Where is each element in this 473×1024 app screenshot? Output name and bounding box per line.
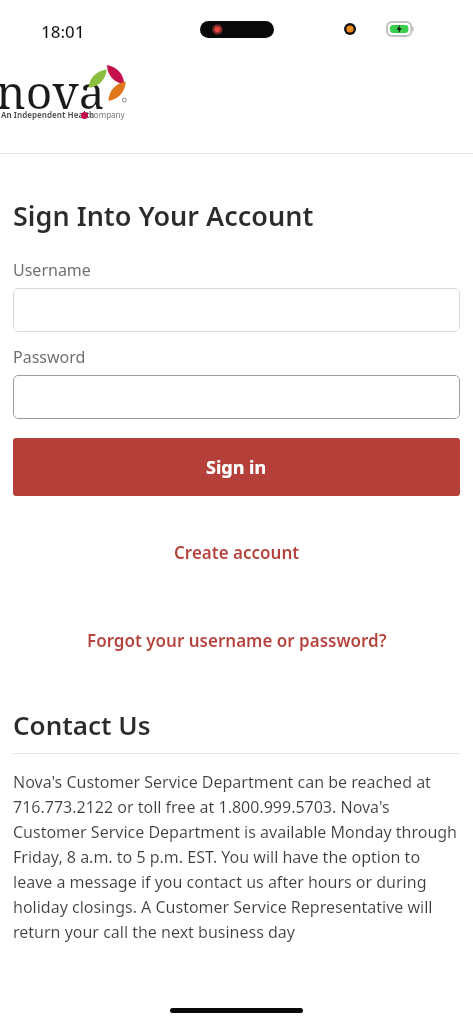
staticText: Password <box>13 346 86 368</box>
staticText: Sign Into Your Account <box>13 197 314 234</box>
staticText: 18:01 <box>41 20 85 43</box>
staticText: Contact Us <box>13 707 151 742</box>
button[interactable]: Username field <box>13 288 460 332</box>
staticText: nova <box>0 60 105 122</box>
button[interactable]: Forgot your username or password? <box>79 621 395 660</box>
button[interactable]: Create account <box>166 533 308 572</box>
staticText: An Independent Health <box>1 109 95 120</box>
staticText: company <box>90 109 125 120</box>
staticText: Username <box>13 259 91 281</box>
button[interactable]: Password field <box>13 375 460 419</box>
staticText: Sign in <box>206 455 267 480</box>
button[interactable]: Sign in <box>13 438 460 496</box>
staticText: Nova's Customer Service Department can b… <box>13 771 460 942</box>
